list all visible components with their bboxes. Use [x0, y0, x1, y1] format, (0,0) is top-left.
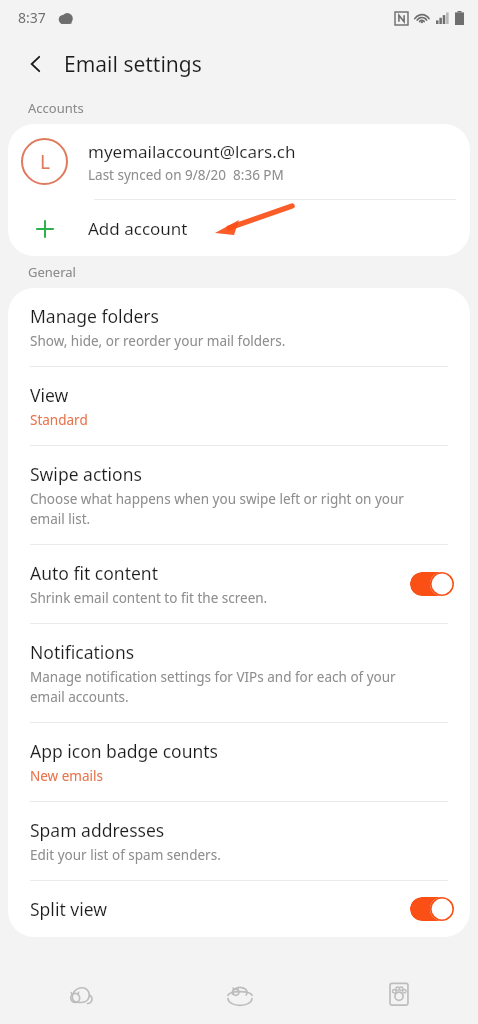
staticText: Add account [88, 217, 188, 240]
staticText: Last synced on 9/8/20 8:36 PM [88, 166, 284, 184]
staticText: Choose what happens when you swipe left … [30, 490, 404, 528]
staticText: Notifications [30, 640, 135, 664]
staticText: Standard [30, 411, 88, 429]
staticText: New emails [30, 767, 103, 785]
staticText: Shrink email content to fit the screen. [30, 589, 268, 607]
button[interactable]: Manage folders [8, 288, 470, 366]
staticText: Spam addresses [30, 818, 165, 842]
staticText: L [40, 149, 50, 175]
button[interactable]: Notifications [8, 624, 470, 722]
button[interactable]: Toggle [410, 572, 454, 596]
button[interactable]: App icon badge counts [8, 723, 470, 801]
staticText: Manage notification settings for VIPs an… [30, 668, 396, 706]
staticText: Manage folders [30, 304, 159, 328]
staticText: Swipe actions [30, 462, 142, 486]
button[interactable]: Toggle [410, 897, 454, 921]
button[interactable]: Cats [0, 963, 160, 1024]
staticText: Email settings [64, 50, 202, 79]
button[interactable]: L [8, 124, 470, 199]
staticText: 8:37 [18, 8, 46, 27]
button[interactable]: Add account [8, 200, 470, 256]
button[interactable]: Split view [8, 881, 470, 937]
staticText: Edit your list of spam senders. [30, 846, 221, 864]
button[interactable]: View [8, 367, 470, 445]
staticText: General [28, 263, 76, 281]
button[interactable]: Swipe actions [8, 446, 470, 544]
button[interactable]: Cat bed [160, 963, 319, 1024]
staticText: View [30, 383, 69, 407]
button[interactable]: Spam addresses [8, 802, 470, 880]
button[interactable]: Auto fit content [8, 545, 470, 623]
button[interactable]: Paw notes [319, 963, 478, 1024]
button[interactable]: Back [14, 42, 58, 86]
staticText: Accounts [28, 99, 84, 117]
staticText: myemailaccount@lcars.ch [88, 140, 296, 163]
staticText: Auto fit content [30, 561, 158, 585]
staticText: Show, hide, or reorder your mail folders… [30, 332, 286, 350]
staticText: App icon badge counts [30, 739, 218, 763]
staticText: Split view [30, 897, 107, 921]
